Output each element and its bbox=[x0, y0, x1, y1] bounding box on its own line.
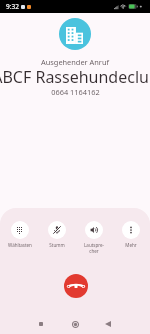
staticText: 9:32 bbox=[6, 2, 19, 11]
button[interactable]: Startbildschirm bbox=[67, 316, 83, 332]
button[interactable]: Auflegen bbox=[64, 274, 88, 298]
staticText: Stumm bbox=[49, 242, 65, 248]
button[interactable]: Zurück bbox=[100, 316, 116, 332]
button[interactable]: Mehr bbox=[117, 221, 144, 248]
button[interactable]: Lautspre- cher bbox=[80, 221, 107, 254]
staticText: Lautspre- cher bbox=[84, 242, 104, 254]
staticText: 0664 1164162 bbox=[51, 87, 100, 97]
button[interactable]: Letzte Apps bbox=[33, 316, 49, 332]
staticText: Wähltasten bbox=[8, 242, 32, 248]
button[interactable]: Wähltasten bbox=[6, 221, 33, 248]
staticText: Mehr bbox=[125, 242, 137, 248]
button[interactable]: Stumm bbox=[43, 221, 70, 248]
staticText: ABCF Rassehundeclub bbox=[0, 66, 150, 88]
staticText: Ausgehender Anruf bbox=[41, 57, 109, 67]
